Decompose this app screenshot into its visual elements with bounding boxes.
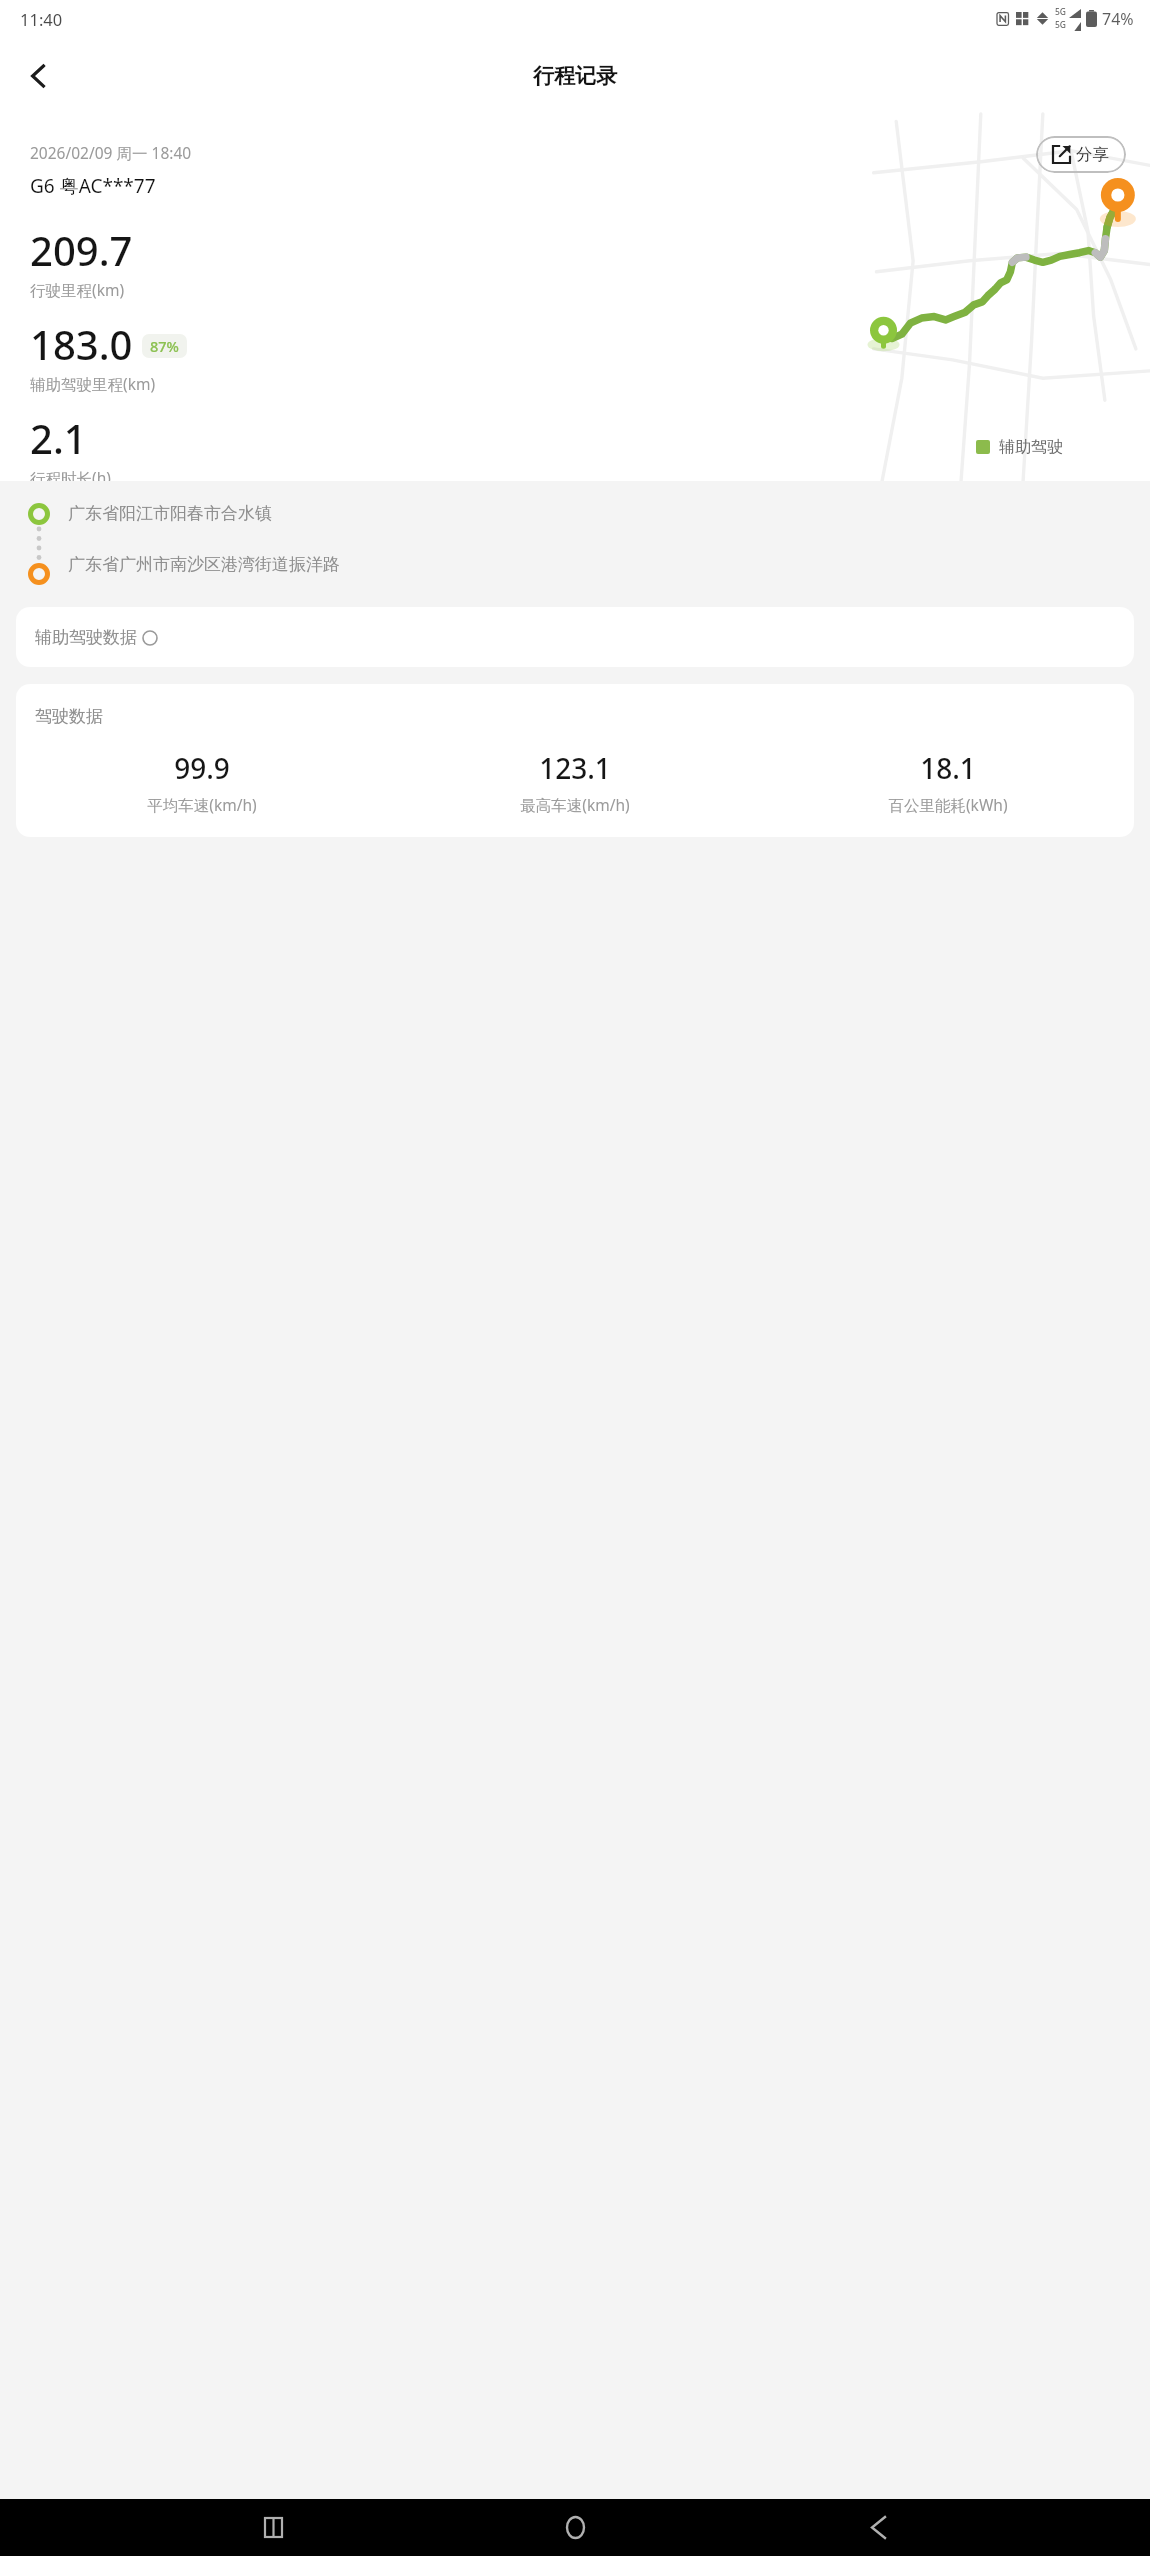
staticText: 99.9: [174, 749, 230, 787]
staticText: 209.7: [30, 223, 133, 277]
staticText: 辅助驾驶里程(km): [30, 373, 156, 394]
button[interactable]: 驾驶数据: [16, 684, 1134, 837]
staticText: G6 粤AC***77: [30, 173, 156, 199]
staticText: 5G: [1055, 6, 1067, 18]
button[interactable]: Back: [848, 2499, 908, 2556]
staticText: 行程时长(h): [30, 467, 111, 481]
staticText: 百公里能耗(kWh): [888, 794, 1008, 815]
staticText: 18.1: [920, 749, 976, 787]
staticText: 11:40: [20, 8, 63, 30]
button[interactable]: Home: [545, 2499, 605, 2556]
button[interactable]: 分享: [1036, 136, 1126, 173]
staticText: 驾驶数据: [35, 706, 103, 727]
button[interactable]: 辅助驾驶数据: [16, 607, 1134, 667]
staticText: 74%: [1102, 8, 1134, 30]
staticText: 平均车速(km/h): [147, 794, 257, 815]
staticText: 183.0: [30, 317, 133, 371]
button[interactable]: Recents: [243, 2499, 303, 2556]
staticText: 2.1: [30, 411, 87, 465]
staticText: 123.1: [539, 749, 611, 787]
staticText: 辅助驾驶: [999, 437, 1063, 457]
staticText: 行驶里程(km): [30, 279, 125, 300]
staticText: 最高车速(km/h): [520, 794, 630, 815]
staticText: 2026/02/09 周一 18:40: [30, 142, 192, 163]
staticText: 辅助驾驶数据: [35, 627, 137, 648]
staticText: 广东省广州市南沙区港湾街道振洋路: [68, 554, 340, 575]
staticText: 5G: [1055, 19, 1067, 31]
staticText: 广东省阳江市阳春市合水镇: [68, 503, 272, 524]
staticText: 分享: [1076, 144, 1109, 165]
button[interactable]: Back: [10, 47, 68, 105]
staticText: 行程记录: [533, 63, 617, 89]
staticText: 87%: [150, 336, 179, 356]
